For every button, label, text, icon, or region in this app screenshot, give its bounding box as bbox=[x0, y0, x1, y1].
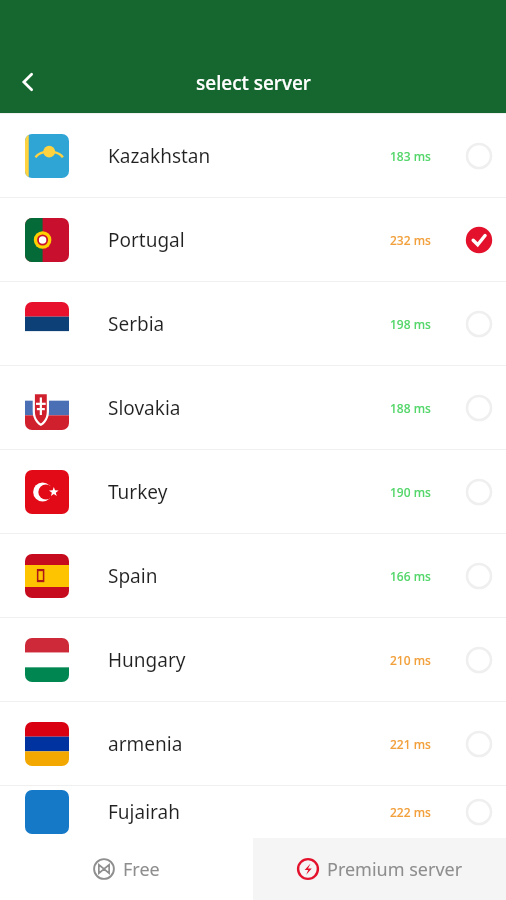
button[interactable]: armenia bbox=[0, 702, 506, 785]
staticText: Kazakhstan bbox=[108, 143, 390, 169]
staticText: 190 ms bbox=[390, 484, 431, 500]
staticText: Spain bbox=[108, 563, 390, 589]
staticText: 188 ms bbox=[390, 400, 431, 416]
staticText: Slovakia bbox=[108, 395, 390, 421]
staticText: Hungary bbox=[108, 647, 390, 673]
staticText: select server bbox=[196, 70, 311, 96]
staticText: 183 ms bbox=[390, 148, 431, 164]
button[interactable]: Serbia bbox=[0, 282, 506, 365]
staticText: Free bbox=[123, 857, 160, 882]
staticText: 232 ms bbox=[390, 232, 431, 248]
staticText: 166 ms bbox=[390, 568, 431, 584]
staticText: Portugal bbox=[108, 227, 390, 253]
button[interactable]: Spain bbox=[0, 534, 506, 617]
button[interactable]: Fujairah bbox=[0, 786, 506, 838]
staticText: 221 ms bbox=[390, 736, 431, 752]
button[interactable]: Kazakhstan bbox=[0, 114, 506, 197]
button[interactable]: Back bbox=[6, 60, 50, 104]
staticText: Fujairah bbox=[108, 799, 390, 825]
staticText: Serbia bbox=[108, 311, 390, 337]
button[interactable]: Free bbox=[0, 838, 253, 900]
staticText: Premium server bbox=[327, 857, 463, 882]
staticText: armenia bbox=[108, 731, 390, 757]
button[interactable]: Turkey bbox=[0, 450, 506, 533]
staticText: 198 ms bbox=[390, 316, 431, 332]
staticText: 222 ms bbox=[390, 804, 431, 820]
button[interactable]: Portugal bbox=[0, 198, 506, 281]
button[interactable]: Slovakia bbox=[0, 366, 506, 449]
button[interactable]: Hungary bbox=[0, 618, 506, 701]
staticText: 210 ms bbox=[390, 652, 431, 668]
staticText: Turkey bbox=[108, 479, 390, 505]
button[interactable]: Premium server bbox=[253, 838, 506, 900]
